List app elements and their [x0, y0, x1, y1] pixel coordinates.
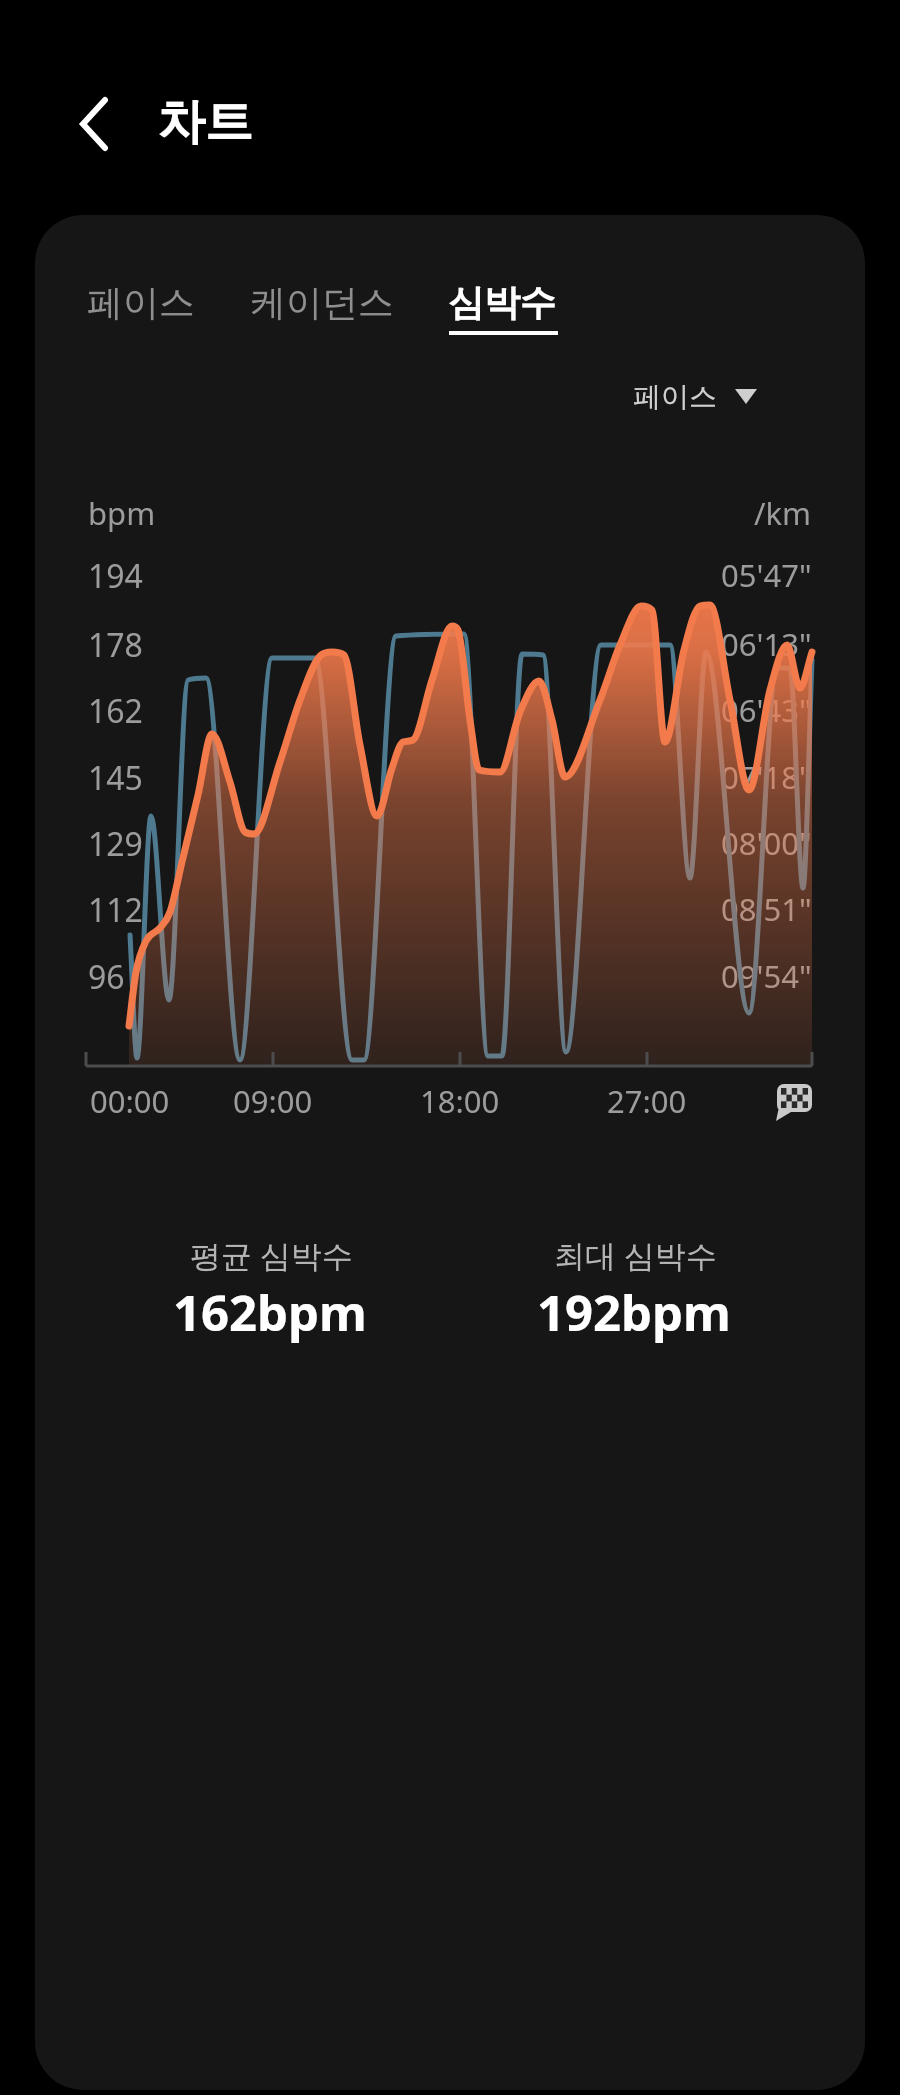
staticText: 162bpm	[173, 1279, 367, 1346]
staticText: 페이스	[633, 379, 717, 414]
staticText: 09:00	[233, 1080, 313, 1122]
staticText: 05'47"	[721, 554, 812, 596]
staticText: 평균 심박수	[190, 1234, 354, 1276]
button[interactable]	[62, 84, 126, 164]
staticText: 08'00"	[721, 822, 812, 864]
staticText: /km	[754, 492, 812, 534]
staticText: 06'43"	[721, 689, 812, 731]
staticText: 162	[88, 689, 143, 733]
staticText: bpm	[88, 492, 156, 534]
staticText: 09'54"	[721, 955, 812, 997]
staticText: 27:00	[607, 1080, 687, 1122]
staticText: 00:00	[90, 1080, 170, 1122]
staticText: 18:00	[420, 1080, 500, 1122]
staticText: 케이던스	[250, 280, 394, 325]
staticText: 심박수	[448, 280, 556, 325]
button[interactable]: 페이스	[70, 262, 212, 342]
staticText: 192bpm	[537, 1279, 731, 1346]
staticText: 145	[88, 756, 143, 800]
staticText: 차트	[157, 92, 253, 152]
staticText: 최대 심박수	[554, 1234, 718, 1276]
staticText: 112	[88, 888, 143, 932]
button[interactable]: 심박수	[434, 262, 570, 342]
staticText: 페이스	[87, 280, 195, 325]
staticText: 129	[88, 822, 143, 866]
staticText: 194	[88, 554, 143, 598]
button[interactable]: 페이스	[633, 370, 757, 422]
staticText: 178	[88, 623, 143, 667]
staticText: 06'13"	[721, 623, 812, 665]
staticText: 08'51"	[721, 888, 812, 930]
staticText: 07'18"	[721, 756, 812, 798]
staticText: 96	[88, 955, 125, 999]
button[interactable]: 케이던스	[232, 262, 412, 342]
